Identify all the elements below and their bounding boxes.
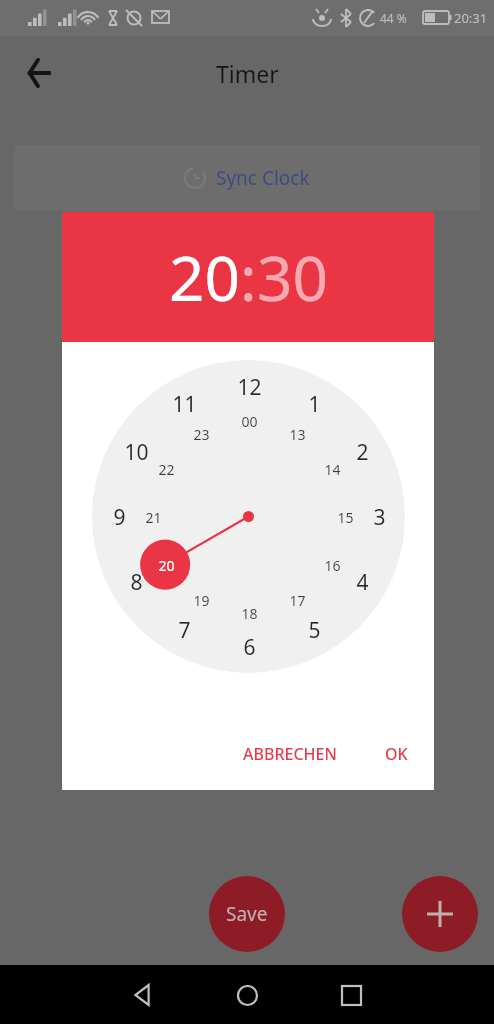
button[interactable]: Add <box>402 876 478 952</box>
staticText: : <box>240 235 257 319</box>
staticText: 20:31 <box>454 9 488 27</box>
staticText: 23 <box>193 425 210 444</box>
staticText: 18 <box>241 604 258 623</box>
button[interactable]: Home <box>221 969 273 1021</box>
staticText: 21 <box>145 508 162 527</box>
button[interactable]: 20 <box>169 235 240 319</box>
button[interactable]: Back <box>117 969 169 1021</box>
button[interactable]: 30 <box>257 235 328 319</box>
staticText: 7 <box>178 616 191 645</box>
staticText: 11 <box>172 390 197 419</box>
staticText: 14 <box>324 460 341 479</box>
staticText: 1 <box>308 390 321 419</box>
staticText: 17 <box>289 591 306 610</box>
button[interactable]: Save <box>209 876 285 952</box>
staticText: 2 <box>356 438 369 467</box>
staticText: 44 % <box>380 10 407 26</box>
button[interactable]: OK <box>375 735 418 773</box>
staticText: Sync Clock <box>216 165 310 191</box>
staticText: 16 <box>324 556 341 575</box>
staticText: OK <box>385 743 408 765</box>
staticText: 15 <box>337 508 354 527</box>
staticText: 5 <box>308 616 321 645</box>
staticText: 9 <box>113 503 126 532</box>
button[interactable]: Back <box>16 49 64 97</box>
staticText: 19 <box>193 591 210 610</box>
button[interactable]: 12 <box>92 360 405 673</box>
staticText: Save <box>226 901 268 927</box>
staticText: ABBRECHEN <box>243 743 337 765</box>
staticText: 6 <box>243 633 256 662</box>
staticText: 30 <box>257 235 328 319</box>
staticText: 20 <box>169 235 240 319</box>
staticText: 20 <box>158 556 175 575</box>
staticText: 4 <box>356 568 369 597</box>
button[interactable]: Sync Clock <box>14 145 480 211</box>
staticText: 12 <box>237 373 262 402</box>
staticText: 22 <box>158 460 175 479</box>
button[interactable]: Recents <box>325 969 377 1021</box>
button[interactable]: ABBRECHEN <box>233 735 347 773</box>
staticText: 3 <box>373 503 386 532</box>
staticText: 8 <box>130 568 143 597</box>
staticText: 00 <box>241 412 258 431</box>
staticText: Timer <box>216 58 279 89</box>
staticText: 13 <box>289 425 306 444</box>
staticText: 10 <box>124 438 149 467</box>
